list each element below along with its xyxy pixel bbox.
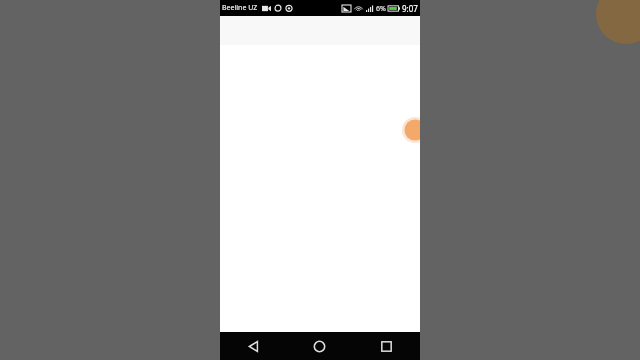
staticText: 6% <box>376 4 386 14</box>
staticText: Beeline UZ <box>222 3 258 13</box>
button[interactable]: Add <box>402 117 420 143</box>
button[interactable]: Recent apps <box>353 332 420 360</box>
button[interactable]: Home <box>286 332 353 360</box>
button[interactable]: Back <box>220 332 286 360</box>
staticText: 9:07 <box>402 3 418 14</box>
